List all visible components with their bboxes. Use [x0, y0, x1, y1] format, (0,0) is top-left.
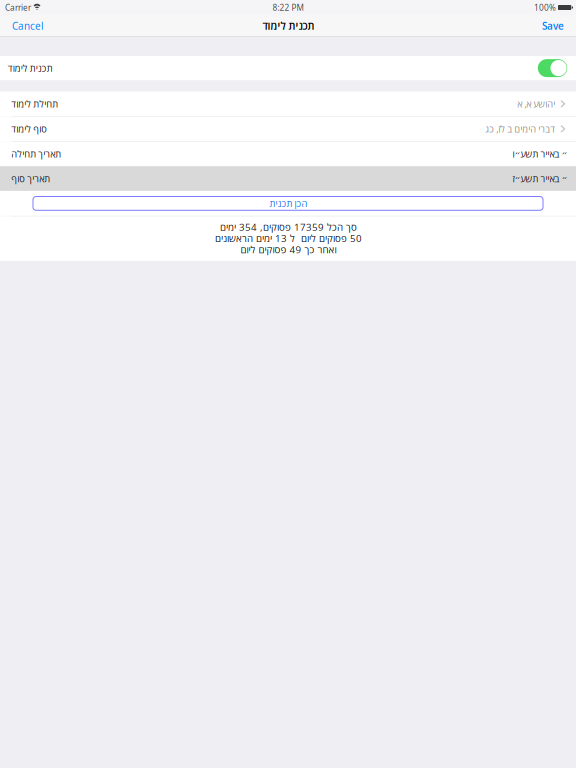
staticText: 100%: [534, 2, 556, 13]
button[interactable]: תאריך סוף: [0, 166, 576, 191]
staticText: הכן תכנית: [269, 197, 307, 210]
button[interactable]: תכנית לימוד: [538, 59, 567, 77]
staticText: דברי הימים ב לז, כג: [485, 122, 555, 135]
staticText: ״ באייר תשע״ז: [512, 172, 567, 185]
staticText: Carrier: [5, 2, 31, 13]
staticText: סך הכל 17359 פסוקים, 354 ימים: [219, 220, 356, 234]
staticText: Cancel: [12, 19, 44, 32]
staticText: יהושע א, א: [517, 97, 555, 110]
staticText: תכנית לימוד: [262, 19, 314, 33]
button[interactable]: סוף לימוד: [0, 117, 576, 141]
staticText: תאריך סוף: [11, 172, 50, 185]
button[interactable]: תאריך תחילה: [0, 142, 576, 166]
staticText: סוף לימוד: [11, 122, 47, 135]
button[interactable]: Cancel: [5, 14, 51, 37]
staticText: 8:22 PM: [272, 2, 303, 13]
staticText: ואחר כך 49 פסוקים ליום: [240, 243, 336, 256]
staticText: תחילת לימוד: [11, 97, 58, 110]
button[interactable]: הכן תכנית: [0, 191, 576, 216]
staticText: תכנית לימוד: [7, 62, 52, 74]
staticText: ״ באייר תשע״ו: [512, 148, 567, 160]
button[interactable]: תחילת לימוד: [0, 91, 576, 116]
staticText: Save: [542, 19, 564, 32]
staticText: 50 פסוקים ליום ל 13 ימים הראשונים: [214, 231, 361, 245]
staticText: תאריך תחילה: [11, 148, 61, 160]
button[interactable]: Save: [535, 14, 571, 37]
